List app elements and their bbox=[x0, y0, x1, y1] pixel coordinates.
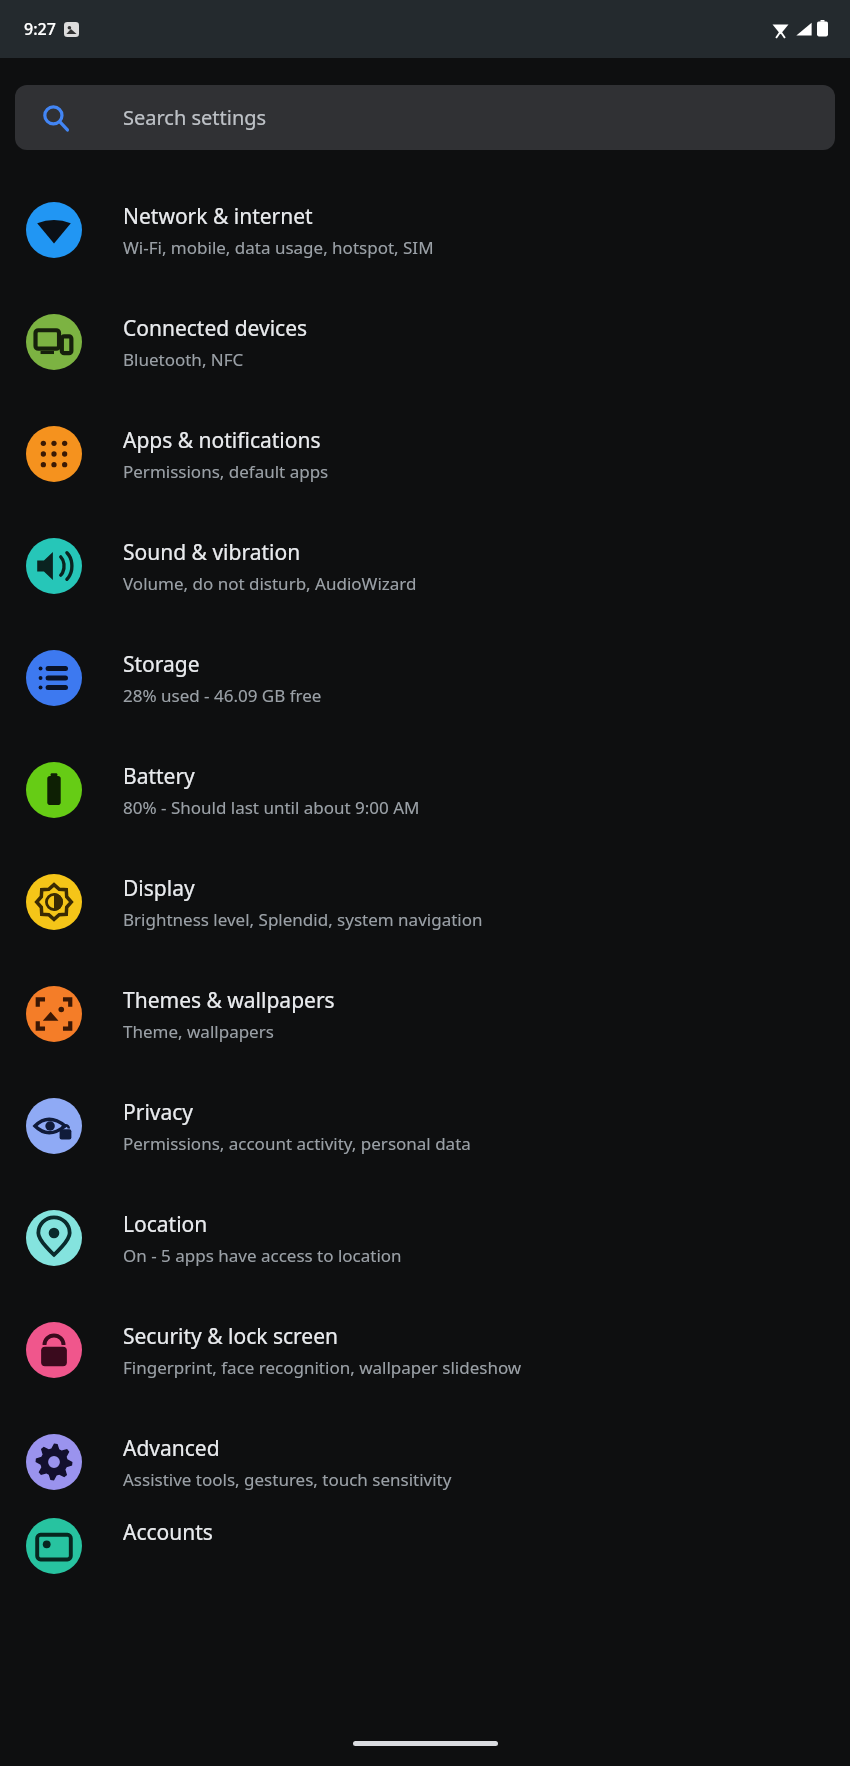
button[interactable]: Sound & vibration bbox=[0, 510, 850, 622]
staticText: Storage bbox=[123, 650, 200, 679]
staticText: Volume, do not disturb, AudioWizard bbox=[123, 572, 417, 595]
staticText: Fingerprint, face recognition, wallpaper… bbox=[123, 1356, 522, 1379]
staticText: 80% - Should last until about 9:00 AM bbox=[123, 796, 420, 819]
button[interactable]: Display bbox=[0, 846, 850, 958]
staticText: Permissions, default apps bbox=[123, 460, 329, 483]
staticText: Battery bbox=[123, 762, 195, 791]
staticText: Display bbox=[123, 874, 195, 903]
button[interactable]: Security & lock screen bbox=[0, 1294, 850, 1406]
staticText: Bluetooth, NFC bbox=[123, 348, 244, 371]
staticText: Brightness level, Splendid, system navig… bbox=[123, 908, 483, 931]
staticText: Search settings bbox=[123, 104, 267, 131]
button[interactable]: Search settings bbox=[15, 85, 835, 150]
staticText: Network & internet bbox=[123, 202, 313, 231]
button[interactable]: Advanced bbox=[0, 1406, 850, 1518]
button[interactable]: Storage bbox=[0, 622, 850, 734]
staticText: 9:27 bbox=[24, 18, 56, 40]
staticText: On - 5 apps have access to location bbox=[123, 1244, 402, 1267]
button[interactable]: Accounts bbox=[0, 1518, 850, 1588]
button[interactable]: Themes & wallpapers bbox=[0, 958, 850, 1070]
button[interactable]: Connected devices bbox=[0, 286, 850, 398]
staticText: Theme, wallpapers bbox=[123, 1020, 274, 1043]
staticText: 28% used - 46.09 GB free bbox=[123, 684, 322, 707]
staticText: Accounts bbox=[123, 1518, 213, 1547]
staticText: Advanced bbox=[123, 1434, 220, 1463]
staticText: Themes & wallpapers bbox=[123, 986, 335, 1015]
button[interactable]: Apps & notifications bbox=[0, 398, 850, 510]
staticText: Sound & vibration bbox=[123, 538, 301, 567]
button[interactable]: Network & internet bbox=[0, 174, 850, 286]
staticText: Connected devices bbox=[123, 314, 308, 343]
staticText: Apps & notifications bbox=[123, 426, 321, 455]
staticText: Permissions, account activity, personal … bbox=[123, 1132, 471, 1155]
staticText: Security & lock screen bbox=[123, 1322, 339, 1351]
staticText: Wi-Fi, mobile, data usage, hotspot, SIM bbox=[123, 236, 434, 259]
staticText: Location bbox=[123, 1210, 208, 1239]
button[interactable]: Battery bbox=[0, 734, 850, 846]
button[interactable]: Privacy bbox=[0, 1070, 850, 1182]
staticText: Assistive tools, gestures, touch sensiti… bbox=[123, 1468, 452, 1491]
staticText: Privacy bbox=[123, 1098, 194, 1127]
button[interactable]: Location bbox=[0, 1182, 850, 1294]
